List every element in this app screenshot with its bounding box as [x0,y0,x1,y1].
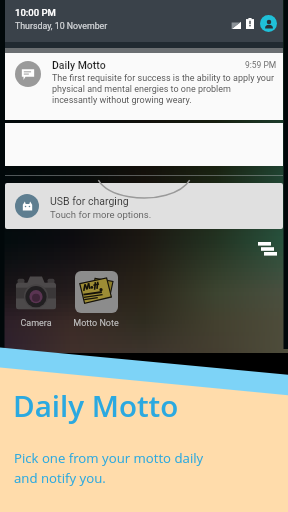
staticText: The first requisite for success is the a… [52,73,275,106]
staticText: Daily Motto [52,59,106,71]
button[interactable]: Camera [6,270,66,329]
staticText: USB for charging [50,195,129,207]
button[interactable]: Account [260,15,277,32]
staticText: Camera [20,318,52,329]
staticText: Thursday, 10 November [15,21,108,31]
button[interactable]: Motto Note [66,270,126,329]
button[interactable]: USB for charging [5,183,283,229]
button[interactable]: Clear all notifications [258,241,278,257]
other: Battery [246,18,254,29]
button[interactable]: Daily Motto [5,53,283,120]
other: LTE signal [230,19,241,29]
staticText: Motto Note [73,318,119,329]
staticText: Pick one from your motto daily and notif… [14,449,204,487]
staticText: 9:59 PM [245,60,277,70]
staticText: Daily Motto [13,385,179,425]
staticText: Touch for more options. [50,209,152,220]
staticText: 10:00 PM [15,7,56,18]
